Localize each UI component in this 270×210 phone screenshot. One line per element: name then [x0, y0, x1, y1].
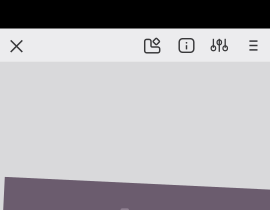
button[interactable]: Menu [237, 29, 270, 62]
button[interactable]: Close [0, 29, 33, 62]
button[interactable]: Crop and rotate [138, 29, 171, 62]
button[interactable]: Adjustments [204, 29, 237, 62]
button[interactable]: Info [171, 29, 204, 62]
